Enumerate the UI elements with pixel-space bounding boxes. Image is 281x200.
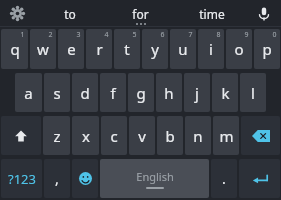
staticText: m [219,126,234,146]
button[interactable]: Settings [0,0,34,27]
staticText: English [136,169,174,184]
staticText: f [110,83,116,103]
button[interactable]: l [240,73,266,112]
button[interactable]: q [1,29,28,69]
button[interactable]: Voice input [247,0,281,27]
staticText: d [80,83,90,103]
staticText: k [221,83,230,103]
button[interactable]: Enter [239,159,280,198]
staticText: . [222,169,226,188]
button[interactable]: d [72,73,98,112]
staticText: l [251,83,255,103]
staticText: z [53,126,61,146]
staticText: q [10,39,20,59]
button[interactable]: c [101,116,127,155]
button[interactable]: x [72,116,99,155]
button[interactable]: k [212,73,238,112]
button[interactable]: t [114,29,140,69]
staticText: for [132,6,149,22]
staticText: 3 [76,30,81,40]
button[interactable]: o [226,29,252,69]
staticText: 7 [188,30,193,40]
button[interactable]: n [185,116,211,155]
button[interactable]: i [198,29,224,69]
button[interactable]: z [43,116,70,155]
staticText: 8 [216,30,221,40]
staticText: time [199,6,225,22]
staticText: a [24,83,33,103]
staticText: j [195,83,199,103]
button[interactable]: g [128,73,154,112]
button[interactable]: p [254,29,280,69]
button[interactable]: r [86,29,112,69]
button[interactable]: m [213,116,239,155]
staticText: w [37,39,49,59]
button[interactable]: time [176,0,247,27]
button[interactable]: ?123 [1,159,42,198]
button[interactable]: to [34,0,105,27]
button[interactable]: s [44,73,70,112]
staticText: 0 [272,30,277,40]
staticText: y [151,39,159,59]
staticText: b [165,126,175,146]
staticText: s [53,83,61,103]
staticText: r [96,39,103,59]
staticText: o [234,39,244,59]
button[interactable]: English [100,159,209,198]
button[interactable]: e [58,29,84,69]
button[interactable]: Backspace [241,116,280,155]
staticText: h [164,83,174,103]
button[interactable]: w [30,29,56,69]
button[interactable]: h [156,73,182,112]
staticText: u [178,39,188,59]
button[interactable]: b [157,116,183,155]
button[interactable]: for [105,0,176,27]
button[interactable]: . [211,159,237,198]
button[interactable]: Emoji [72,159,98,198]
staticText: 1 [20,30,25,40]
button[interactable]: y [142,29,168,69]
staticText: g [136,83,146,103]
staticText: x [82,126,90,146]
button[interactable]: u [170,29,196,69]
staticText: n [193,126,203,146]
button[interactable]: Shift [1,116,41,155]
staticText: 9 [244,30,249,40]
staticText: p [262,39,272,59]
button[interactable]: a [15,73,42,112]
staticText: i [209,39,213,59]
staticText: 4 [104,30,109,40]
staticText: t [124,39,130,59]
staticText: v [138,126,146,146]
staticText: , [55,169,59,188]
staticText: to [64,6,76,22]
button[interactable]: , [44,159,70,198]
staticText: e [67,39,76,59]
staticText: 2 [48,30,53,40]
button[interactable]: v [129,116,155,155]
button[interactable]: f [100,73,126,112]
staticText: 6 [160,30,165,40]
staticText: c [110,126,118,146]
staticText: ?123 [8,170,36,188]
staticText: 5 [132,30,137,40]
button[interactable]: j [184,73,210,112]
